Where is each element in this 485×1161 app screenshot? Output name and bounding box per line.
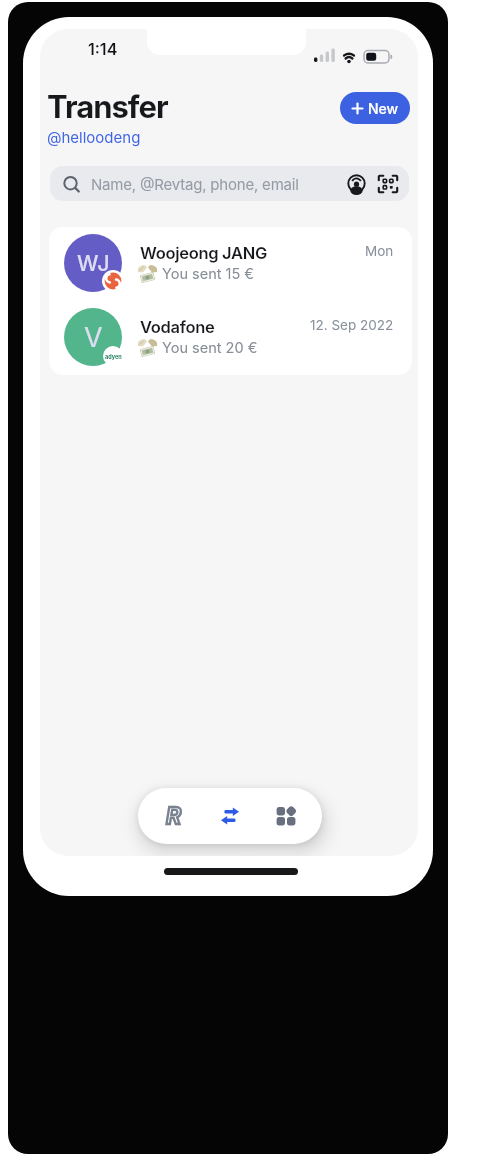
staticText: Transfer: [47, 88, 168, 126]
staticText: Woojeong JANG: [140, 243, 268, 263]
staticText: You sent 15 €: [162, 265, 255, 283]
staticText: 12. Sep 2022: [310, 317, 394, 333]
staticText: You sent 20 €: [162, 339, 258, 357]
staticText: 1:14: [88, 39, 118, 58]
button[interactable]: R: [160, 788, 188, 844]
button[interactable]: @helloodeng: [47, 128, 141, 146]
staticText: Name, @Revtag, phone, email: [91, 175, 299, 193]
staticText: R: [166, 802, 182, 830]
staticText: Mon: [365, 243, 394, 259]
staticText: Vodafone: [140, 317, 215, 337]
button[interactable]: V: [49, 301, 412, 375]
button[interactable]: New: [340, 92, 410, 124]
staticText: WJ: [77, 250, 110, 276]
button[interactable]: [215, 788, 245, 844]
staticText: V: [84, 321, 103, 354]
button[interactable]: [271, 788, 301, 844]
staticText: New: [368, 100, 399, 117]
button[interactable]: Name, @Revtag, phone, email: [50, 166, 409, 201]
button[interactable]: WJ: [49, 227, 412, 301]
staticText: adyen: [105, 354, 122, 361]
